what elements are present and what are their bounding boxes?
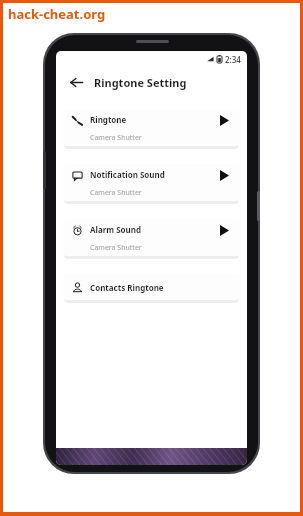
staticText: Notification Sound <box>90 169 165 180</box>
button[interactable]: Play Ringtone <box>216 112 232 128</box>
staticText: Camera Shutter <box>90 243 142 253</box>
staticText: Ringtone <box>90 114 127 125</box>
button[interactable]: Play Alarm Sound <box>216 222 232 238</box>
button[interactable]: Notification Sound <box>63 164 240 201</box>
staticText: 2:34 <box>225 54 241 65</box>
staticText: Camera Shutter <box>90 133 142 143</box>
button[interactable]: Alarm Sound <box>63 219 240 256</box>
button[interactable]: Ringtone <box>63 109 240 146</box>
staticText: Alarm Sound <box>90 224 142 235</box>
staticText: Contacts Ringtone <box>90 282 164 293</box>
button[interactable]: Contacts Ringtone <box>63 274 240 300</box>
button[interactable]: Back <box>65 71 87 93</box>
staticText: hack-cheat.org <box>8 5 106 23</box>
staticText: Camera Shutter <box>90 188 142 198</box>
button[interactable]: Play Notification Sound <box>216 167 232 183</box>
staticText: Ringtone Setting <box>94 75 187 90</box>
